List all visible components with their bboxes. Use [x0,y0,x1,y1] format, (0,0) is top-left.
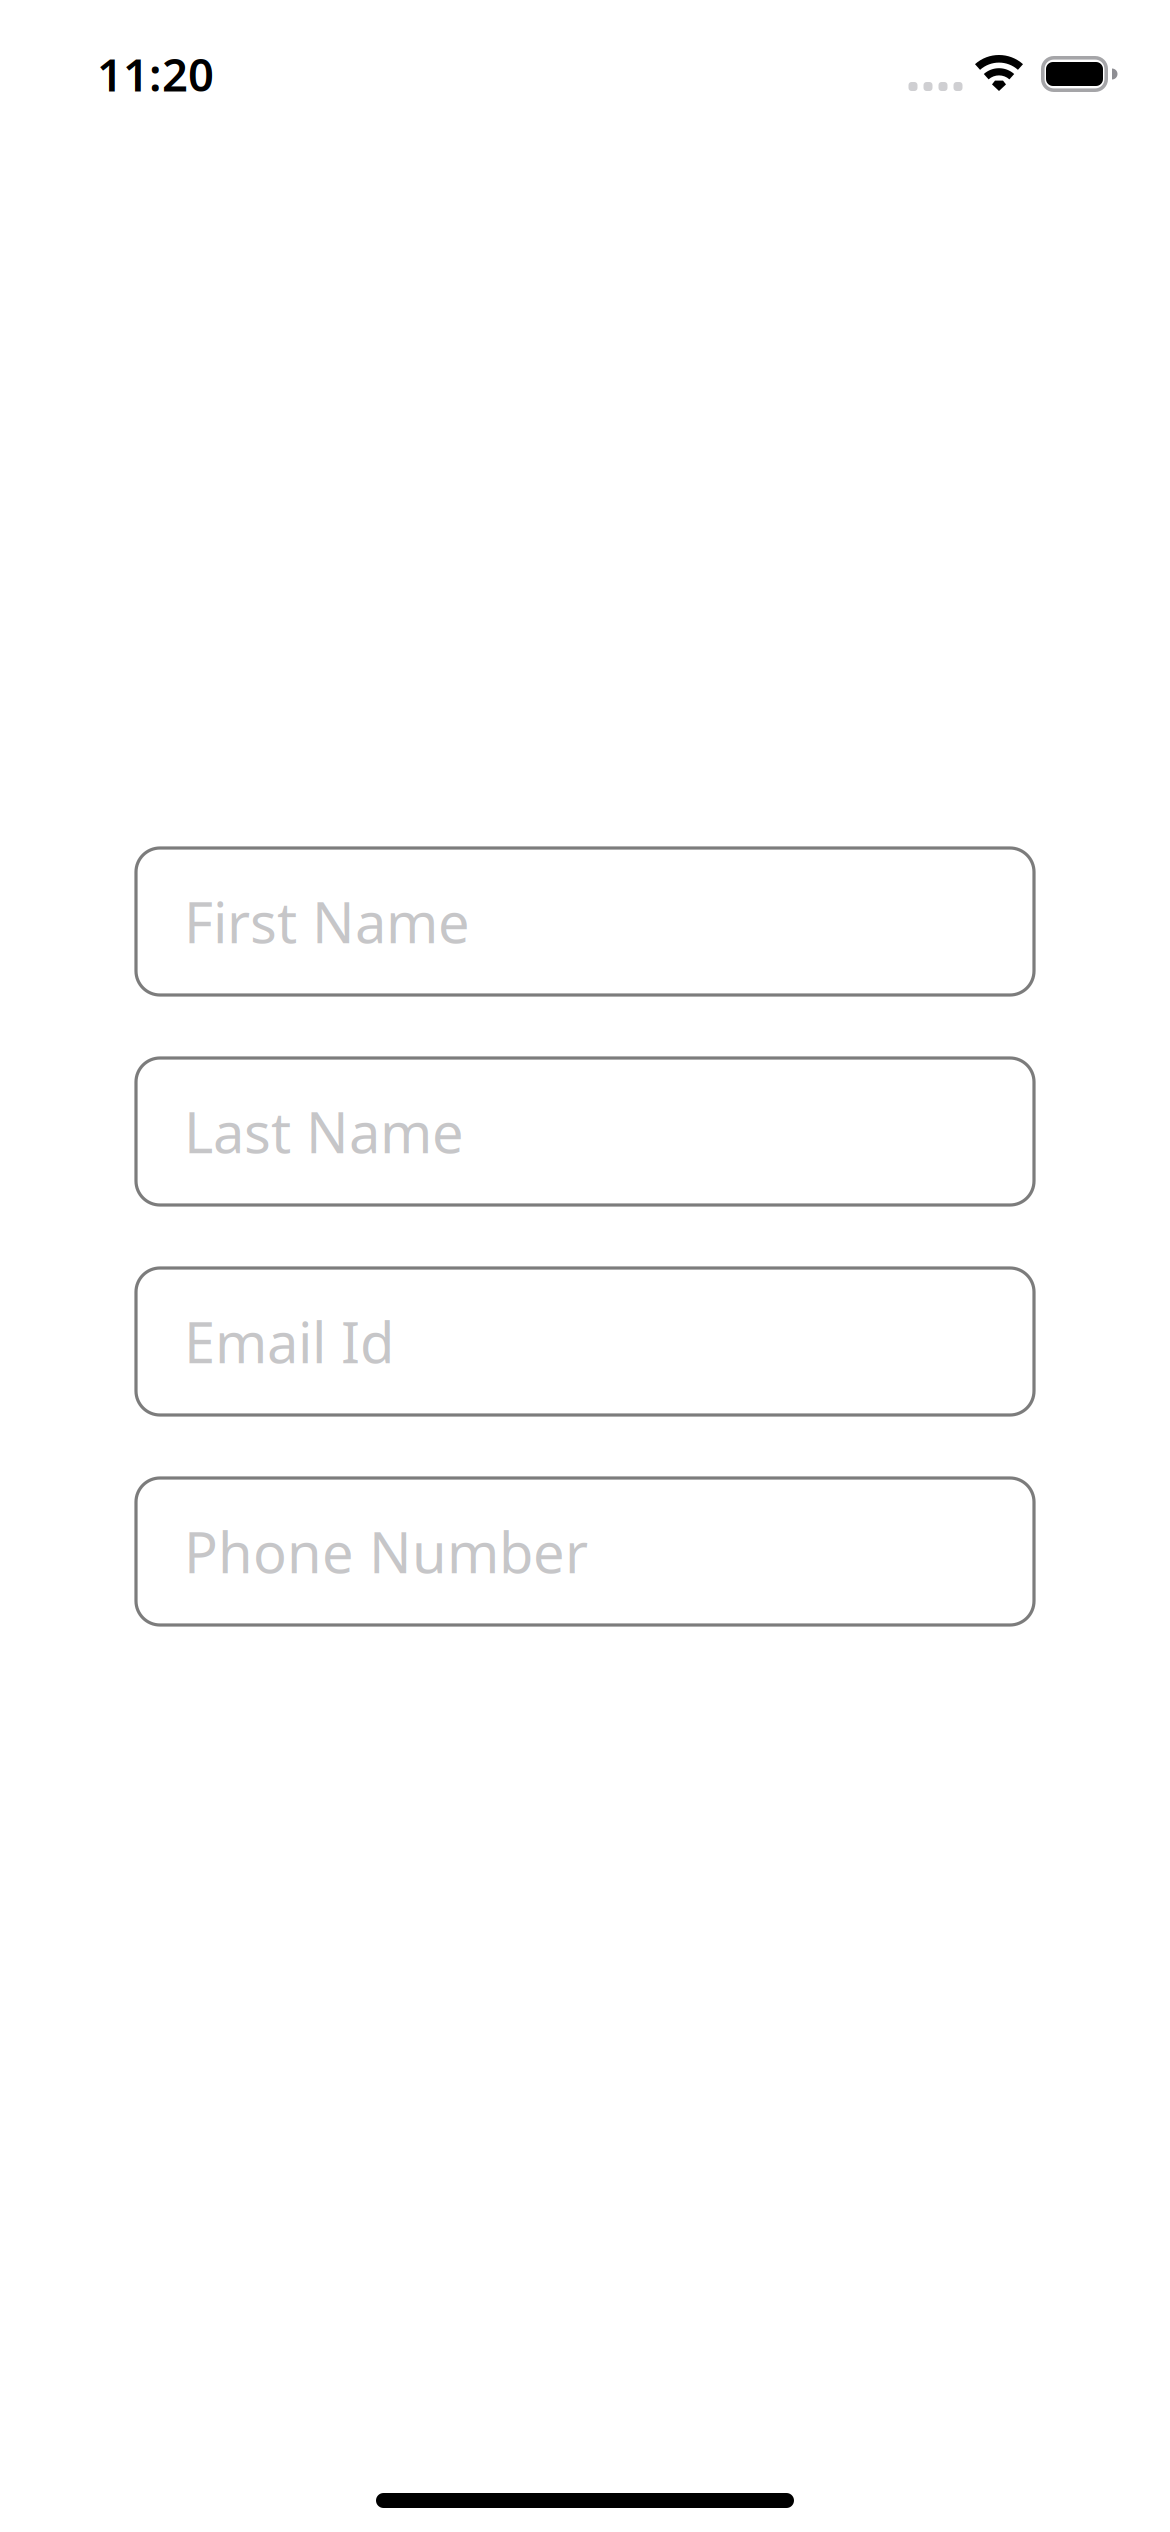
button[interactable]: Last Name [136,1058,1034,1205]
staticText: First Name [184,884,470,959]
button[interactable]: First Name [136,848,1034,995]
button[interactable]: Phone Number [136,1478,1034,1625]
staticText: Email Id [184,1304,394,1379]
staticText: Last Name [184,1094,464,1169]
staticText: 11:20 [97,44,214,104]
button[interactable]: Email Id [136,1268,1034,1415]
staticText: Phone Number [184,1514,588,1589]
